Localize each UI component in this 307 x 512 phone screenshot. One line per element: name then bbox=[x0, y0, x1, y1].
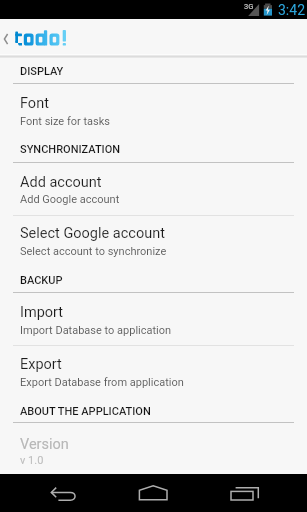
staticText: Export Database from application bbox=[20, 376, 184, 389]
staticText: Import bbox=[20, 304, 64, 321]
button[interactable]: Recent apps bbox=[205, 474, 307, 512]
staticText: SYNCHRONIZATION bbox=[20, 143, 121, 156]
staticText: Font size for tasks bbox=[20, 115, 110, 128]
staticText: Select account to synchronize bbox=[20, 245, 167, 258]
button[interactable] bbox=[0, 422, 307, 470]
button[interactable] bbox=[0, 345, 307, 392]
other: Navigate up bbox=[3, 33, 9, 45]
button[interactable]: Back bbox=[0, 474, 103, 512]
button[interactable]: Home bbox=[103, 474, 205, 512]
button[interactable] bbox=[0, 292, 307, 345]
staticText: Font bbox=[20, 95, 49, 112]
staticText: Add account bbox=[20, 174, 102, 191]
button[interactable] bbox=[0, 83, 307, 131]
staticText: 3G bbox=[244, 2, 254, 11]
staticText: Version bbox=[20, 436, 69, 453]
staticText: Export bbox=[20, 356, 62, 373]
staticText: v 1.0 bbox=[20, 454, 44, 467]
staticText: Add Google account bbox=[20, 193, 120, 206]
button[interactable] bbox=[0, 215, 307, 262]
staticText: BACKUP bbox=[20, 274, 63, 287]
staticText: ABOUT THE APPLICATION bbox=[20, 405, 151, 418]
staticText: Select Google account bbox=[20, 225, 165, 242]
button[interactable] bbox=[0, 19, 307, 58]
staticText: 3:42 bbox=[278, 2, 305, 18]
staticText: DISPLAY bbox=[20, 65, 64, 78]
button[interactable] bbox=[0, 162, 307, 215]
other: todo! bbox=[15, 29, 69, 48]
staticText: Import Database to application bbox=[20, 324, 172, 337]
